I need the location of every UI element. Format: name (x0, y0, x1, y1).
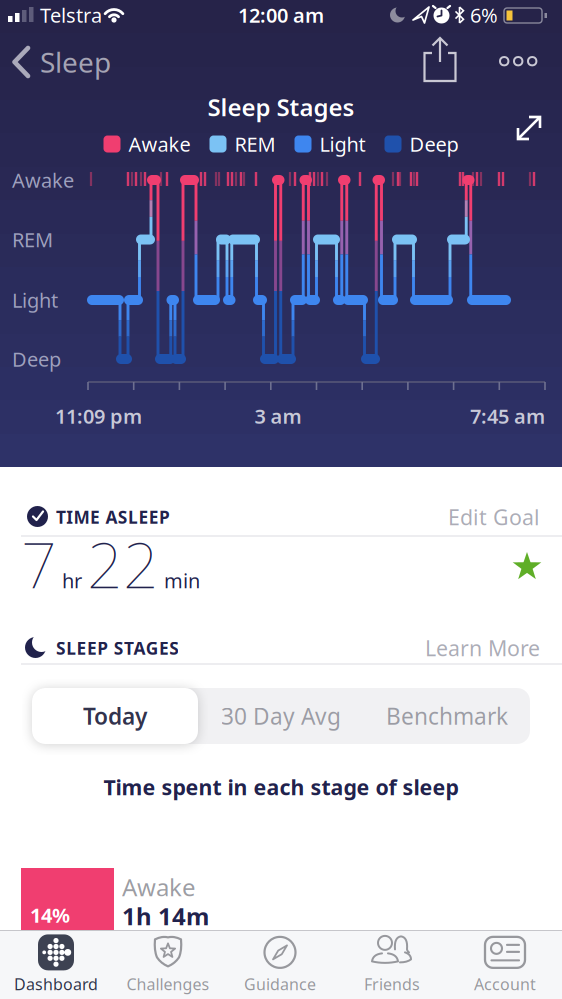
staticText: 30 Day Avg (221, 701, 341, 731)
staticText: Light (12, 287, 58, 313)
button[interactable]: 30 Day Avg (198, 688, 364, 744)
button[interactable]: Today (32, 688, 198, 744)
button[interactable] (516, 115, 542, 141)
staticText: 6% (470, 2, 498, 28)
button[interactable] (495, 50, 541, 72)
staticText: 7:45 am (470, 403, 545, 429)
button[interactable]: Challenges (112, 931, 224, 997)
staticText: 14% (30, 902, 70, 928)
button[interactable]: Benchmark (364, 688, 530, 744)
button[interactable]: Guidance (224, 931, 336, 997)
staticText: Learn More (425, 634, 540, 662)
button[interactable]: Friends (336, 931, 448, 997)
staticText: Awake (128, 131, 190, 157)
staticText: 1h 14m (122, 900, 209, 932)
button[interactable]: Sleep (12, 40, 152, 84)
staticText: SLEEP STAGES (56, 636, 179, 659)
staticText: 12:00 am (238, 2, 324, 28)
button[interactable] (414, 37, 466, 83)
button[interactable]: Dashboard (0, 931, 112, 997)
staticText: Benchmark (386, 701, 508, 731)
staticText: Sleep (40, 43, 111, 81)
staticText: Guidance (244, 973, 316, 995)
staticText: 11:09 pm (55, 403, 142, 429)
staticText: Light (319, 131, 365, 157)
staticText: 22 (87, 522, 159, 606)
staticText: Today (83, 701, 147, 731)
staticText: min (164, 567, 200, 594)
staticText: Time spent in each stage of sleep (103, 773, 458, 801)
staticText: Deep (12, 346, 61, 372)
staticText: Edit Goal (448, 503, 540, 531)
staticText: REM (234, 131, 275, 157)
staticText: Awake (122, 871, 196, 903)
staticText: REM (12, 226, 53, 253)
staticText: Deep (409, 131, 458, 157)
staticText: Telstra (40, 2, 102, 28)
staticText: hr (62, 567, 82, 594)
button[interactable]: Account (449, 931, 561, 997)
button[interactable]: Edit Goal (448, 503, 540, 531)
staticText: Friends (364, 973, 420, 995)
button[interactable]: Learn More (425, 634, 540, 662)
staticText: Dashboard (14, 973, 98, 995)
staticText: Sleep Stages (207, 91, 354, 123)
staticText: Challenges (126, 973, 209, 995)
staticText: Account (474, 973, 536, 995)
staticText: 3 am (254, 403, 301, 429)
staticText: Awake (12, 167, 74, 193)
staticText: TIME ASLEEP (56, 505, 170, 528)
staticText: 7 (21, 522, 57, 606)
